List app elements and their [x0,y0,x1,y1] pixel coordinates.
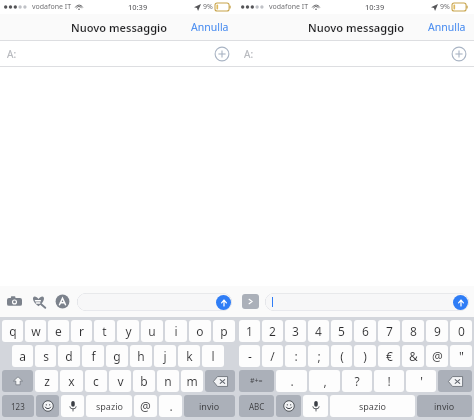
button[interactable]: p [213,320,235,342]
button[interactable]: ( [331,345,352,367]
button[interactable]: 4 [308,320,329,342]
button[interactable]: 3 [285,320,306,342]
staticText: ABC [249,401,265,412]
button[interactable]: Maiuscole [2,370,33,392]
button[interactable]: - [239,345,260,367]
button[interactable]: z [35,370,58,392]
button[interactable]: " [450,345,472,367]
button[interactable]: Dettatura [303,395,328,417]
button[interactable]: Espandi [242,294,259,309]
button[interactable]: Annulla [426,17,468,37]
button[interactable]: s [35,345,56,367]
staticText: u [148,323,156,339]
button[interactable]: Dettatura [61,395,84,417]
button[interactable]: : [285,345,306,367]
staticText: ) [363,348,367,364]
staticText: 0 [458,323,465,339]
button[interactable]: r [71,320,92,342]
button[interactable]: y [117,320,139,342]
staticText: w [31,323,41,339]
button[interactable]: Annulla [189,17,231,37]
button[interactable]: 7 [378,320,400,342]
button[interactable]: l [202,345,224,367]
staticText: @ [140,398,151,414]
staticText: 10:39 [365,2,385,12]
button[interactable]: b [133,370,155,392]
button[interactable]: x [60,370,83,392]
button[interactable]: Aggiungi contatto [214,46,230,62]
button[interactable]: invio [184,395,235,417]
button[interactable]: spazio [86,395,132,417]
button[interactable]: Invia [216,295,231,310]
button[interactable]: . [276,370,307,392]
button[interactable]: @ [426,345,448,367]
button[interactable]: v [109,370,131,392]
staticText: i [174,323,178,339]
button[interactable]: Digital Touch [29,292,48,311]
button[interactable]: w [25,320,46,342]
button[interactable]: g [106,345,128,367]
button[interactable]: 2 [262,320,283,342]
staticText: invio [199,400,220,412]
button[interactable]: u [141,320,163,342]
button[interactable]: App Store [53,292,72,311]
button[interactable]: c [85,370,107,392]
button[interactable]: invio [417,395,472,417]
button[interactable]: n [157,370,179,392]
button[interactable]: Invia [453,295,468,310]
staticText: ; [317,348,321,364]
button[interactable]: d [58,345,80,367]
button[interactable]: , [309,370,340,392]
staticText: & [409,348,418,364]
button[interactable]: k [178,345,200,367]
staticText: 5 [338,323,345,339]
staticText: l [211,348,215,364]
button[interactable]: Fotocamera [5,292,24,311]
button[interactable]: Altri simboli [239,370,274,392]
button[interactable]: ! [374,370,404,392]
button[interactable]: ABC [239,395,274,417]
button[interactable]: t [94,320,115,342]
button[interactable]: Emoji [276,395,301,417]
staticText: A: [244,47,254,61]
button[interactable]: 123 [2,395,34,417]
button[interactable]: 8 [402,320,424,342]
staticText: spazio [359,400,386,412]
staticText: m [186,373,198,389]
button[interactable]: 6 [354,320,376,342]
button[interactable]: @ [134,395,157,417]
button[interactable]: . [159,395,182,417]
button[interactable]: Invia [265,293,469,311]
button[interactable]: & [402,345,424,367]
button[interactable]: e [48,320,69,342]
button[interactable]: j [154,345,176,367]
button[interactable]: Cancella [438,370,472,392]
button[interactable]: Invia [77,293,232,311]
staticText: 3 [292,323,299,339]
button[interactable]: Emoji [36,395,59,417]
button[interactable]: q [2,320,23,342]
button[interactable]: i [165,320,187,342]
staticText: h [137,348,145,364]
button[interactable]: 0 [450,320,472,342]
button[interactable]: h [130,345,152,367]
button[interactable]: ; [308,345,329,367]
button[interactable]: m [181,370,203,392]
staticText: b [140,373,148,389]
button[interactable]: ) [354,345,376,367]
button[interactable]: Cancella [205,370,235,392]
button[interactable]: 1 [239,320,260,342]
button[interactable]: spazio [330,395,415,417]
button[interactable]: 9 [426,320,448,342]
staticText: o [196,323,204,339]
button[interactable]: ? [342,370,372,392]
button[interactable]: ' [406,370,436,392]
button[interactable]: € [378,345,400,367]
staticText: 9 [434,323,441,339]
button[interactable]: Aggiungi contatto [451,46,467,62]
button[interactable]: 5 [331,320,352,342]
button[interactable]: a [12,345,33,367]
button[interactable]: o [189,320,211,342]
button[interactable]: / [262,345,283,367]
button[interactable]: f [82,345,104,367]
